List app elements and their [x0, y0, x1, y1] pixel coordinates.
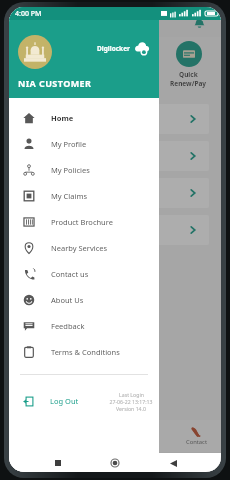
staticText: Contact us: [51, 269, 89, 279]
staticText: Digilocker: [97, 44, 130, 53]
button[interactable]: My Profile: [9, 131, 159, 157]
staticText: Home: [51, 113, 74, 123]
staticText: About Us: [51, 295, 84, 305]
button[interactable]: [19, 178, 209, 208]
staticText: Feedback: [51, 321, 85, 331]
staticText: Contact: [186, 438, 207, 446]
button[interactable]: Log Out: [9, 386, 159, 416]
button[interactable]: About Us: [9, 287, 159, 313]
button[interactable]: Contact: [186, 426, 207, 446]
button[interactable]: [19, 104, 209, 134]
button[interactable]: Contact us: [9, 261, 159, 287]
button[interactable]: Digilocker: [97, 40, 150, 56]
button[interactable]: Notifications: [191, 14, 207, 30]
staticText: Product Brochure: [51, 217, 113, 227]
button[interactable]: Home: [9, 105, 159, 131]
staticText: Nearby Services: [51, 243, 108, 253]
staticText: Version 14.0: [116, 405, 146, 412]
staticText: My Policies: [51, 165, 90, 175]
staticText: My Profile: [51, 139, 87, 149]
staticText: Log Out: [50, 396, 79, 406]
button[interactable]: Feedback: [9, 313, 159, 339]
staticText: 27-06-22 13:17:13: [109, 398, 153, 405]
button[interactable]: Home: [106, 454, 124, 472]
staticText: Renew/Pay: [170, 79, 207, 88]
staticText: My Claims: [51, 191, 87, 201]
button[interactable]: Recents: [49, 454, 67, 472]
button[interactable]: [19, 215, 209, 245]
button[interactable]: [19, 141, 209, 171]
button[interactable]: My Claims: [9, 183, 159, 209]
button[interactable]: Terms & Conditions: [9, 339, 159, 365]
staticText: Quick: [179, 70, 198, 79]
staticText: Last Login: [119, 391, 144, 398]
button[interactable]: My Policies: [9, 157, 159, 183]
button[interactable]: Nearby Services: [9, 235, 159, 261]
staticText: Terms & Conditions: [51, 347, 120, 357]
button[interactable]: Product Brochure: [9, 209, 159, 235]
button[interactable]: Profile picture: [18, 35, 52, 69]
button[interactable]: Quick: [9, 41, 221, 88]
staticText: NIA CUSTOMER: [18, 77, 92, 89]
staticText: 4:00 PM: [15, 9, 42, 19]
button[interactable]: Back: [164, 454, 182, 472]
